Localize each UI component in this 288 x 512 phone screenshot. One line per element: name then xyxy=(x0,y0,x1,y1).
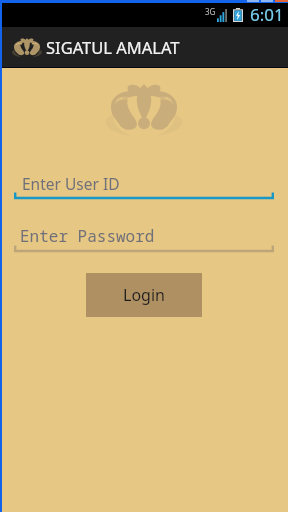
staticText: Enter User ID xyxy=(22,173,120,194)
button[interactable]: Login xyxy=(86,273,202,317)
button[interactable]: Enter User ID xyxy=(0,168,288,201)
staticText: 6:01 xyxy=(250,3,284,26)
button[interactable]: Enter Password xyxy=(0,221,288,254)
staticText: SIGATUL AMALAT xyxy=(46,36,180,58)
staticText: Login xyxy=(123,284,165,306)
staticText: 3G xyxy=(205,6,216,17)
staticText: Enter Password xyxy=(20,225,155,247)
